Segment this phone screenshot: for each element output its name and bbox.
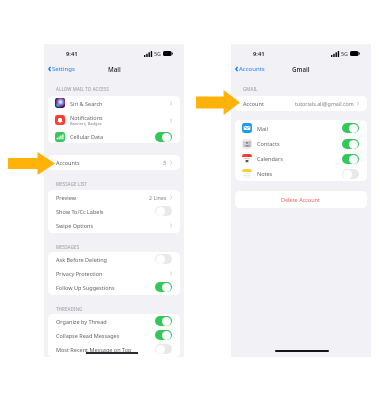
staticText: GMAIL	[243, 86, 258, 92]
button[interactable]: Accounts	[48, 155, 180, 170]
button[interactable]: Notifications	[48, 110, 180, 130]
staticText: Ask Before Deleting	[56, 256, 107, 263]
button[interactable]: Ask Before Deleting	[48, 252, 180, 266]
button[interactable]: Switch off	[155, 206, 172, 216]
staticText: MESSAGE LIST	[56, 181, 88, 187]
staticText: THREADING	[56, 306, 83, 312]
button[interactable]: Most Recent Message on Top	[48, 342, 180, 356]
staticText: Collapse Read Messages	[56, 332, 120, 339]
staticText: Preview	[56, 194, 77, 201]
staticText: Notes	[257, 170, 273, 177]
button[interactable]: Contacts	[235, 136, 367, 151]
staticText: 5G	[154, 50, 162, 57]
button[interactable]: Accounts	[235, 65, 265, 73]
button[interactable]: Account	[235, 96, 367, 111]
button[interactable]: Switch on	[342, 154, 359, 164]
button[interactable]: Settings	[48, 65, 75, 73]
staticText: ALLOW MAIL TO ACCESS	[56, 86, 110, 92]
button[interactable]: Switch on	[155, 132, 172, 142]
button[interactable]: Mail	[235, 120, 367, 136]
button[interactable]: Switch on	[155, 330, 172, 340]
staticText: Contacts	[257, 140, 280, 147]
other: Arrow pointing right	[196, 90, 240, 115]
button[interactable]: Privacy Protection	[48, 266, 180, 280]
button[interactable]: Switch off	[342, 169, 359, 179]
staticText: Accounts	[56, 159, 80, 166]
button[interactable]: Switch off	[155, 254, 172, 264]
button[interactable]: Swipe Options	[48, 218, 180, 232]
button[interactable]: Switch on	[342, 139, 359, 149]
staticText: Privacy Protection	[56, 270, 103, 277]
staticText: 5G	[341, 50, 349, 57]
button[interactable]: Collapse Read Messages	[48, 328, 180, 342]
button[interactable]: Siri & Search	[48, 96, 180, 110]
button[interactable]: Switch off	[155, 344, 172, 354]
staticText: Notifications	[70, 114, 103, 121]
staticText: Settings	[52, 65, 75, 73]
staticText: tutorials.ali@gmail.com	[295, 100, 354, 107]
other: Arrow pointing right	[8, 152, 55, 175]
button[interactable]: Switch on	[155, 316, 172, 326]
button[interactable]: Switch on	[155, 282, 172, 292]
button[interactable]: Show To/Cc Labels	[48, 204, 180, 218]
staticText: Follow Up Suggestions	[56, 284, 115, 291]
staticText: Cellular Data	[70, 133, 104, 140]
button[interactable]: Cellular Data	[48, 130, 180, 143]
staticText: Mail	[257, 125, 268, 132]
staticText: Calendars	[257, 155, 283, 162]
staticText: Show To/Cc Labels	[56, 208, 104, 215]
staticText: Banners, Badges	[70, 121, 102, 126]
staticText: Delete Account	[281, 196, 321, 203]
staticText: Swipe Options	[56, 222, 94, 229]
staticText: Account	[243, 100, 264, 107]
button[interactable]: Follow Up Suggestions	[48, 280, 180, 294]
staticText: Most Recent Message on Top	[56, 346, 132, 353]
staticText: 3	[163, 159, 167, 166]
button[interactable]: Calendars	[235, 151, 367, 166]
staticText: 9:41	[253, 50, 265, 58]
button[interactable]: Organize by Thread	[48, 314, 180, 328]
staticText: Siri & Search	[70, 100, 103, 107]
staticText: 2 Lines	[149, 194, 167, 201]
staticText: MESSAGES	[56, 244, 80, 250]
staticText: Gmail	[292, 65, 310, 73]
button[interactable]: Preview	[48, 190, 180, 204]
button[interactable]: Delete Account	[235, 191, 367, 208]
staticText: Organize by Thread	[56, 318, 107, 325]
staticText: Accounts	[239, 65, 265, 73]
button[interactable]: Switch on	[342, 123, 359, 133]
staticText: Mail	[108, 65, 121, 73]
staticText: 9:41	[66, 50, 78, 58]
button[interactable]: Notes	[235, 166, 367, 181]
